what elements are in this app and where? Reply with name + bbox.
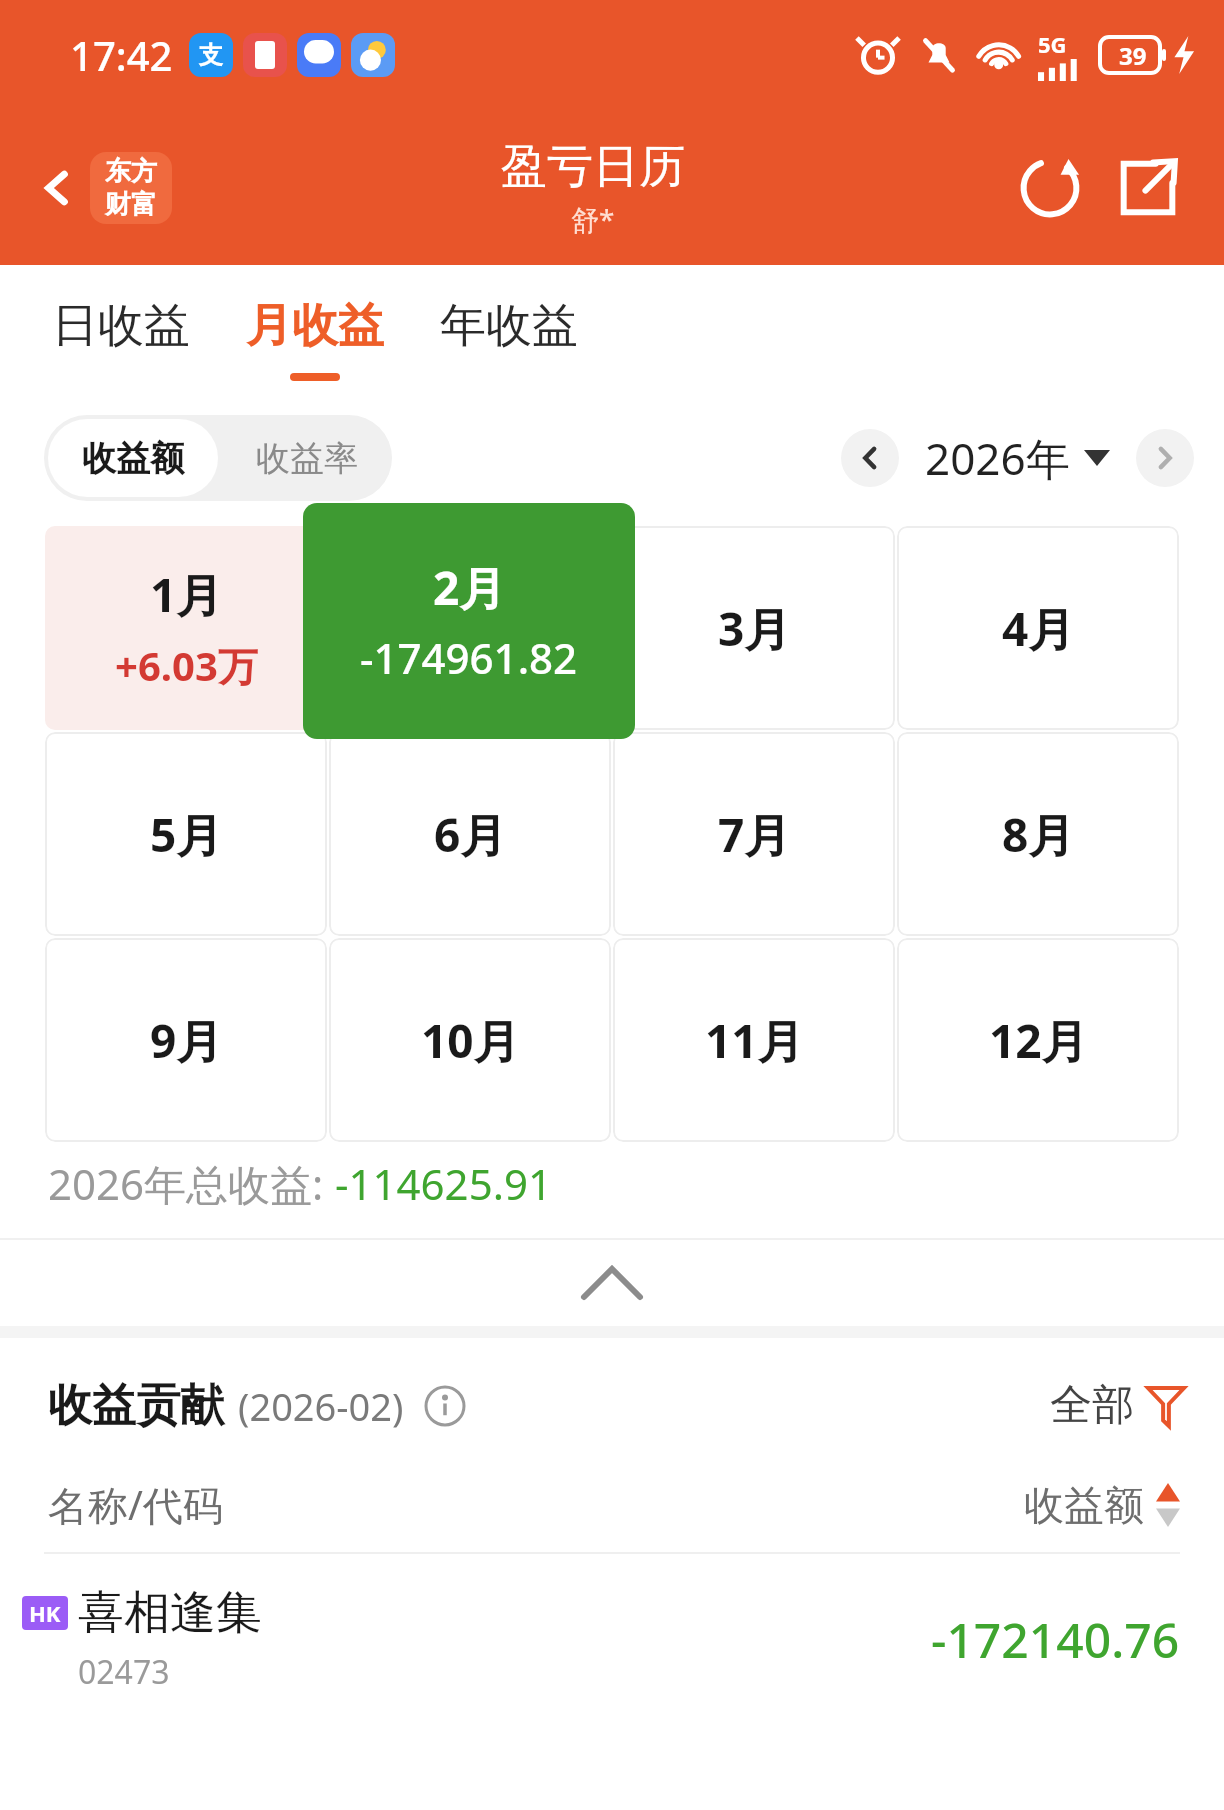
staticText: 2026年 [925,428,1070,488]
staticText: 9月 [150,1009,223,1072]
button[interactable]: 月收益 [242,293,388,385]
button[interactable]: 12月 [897,938,1179,1142]
staticText: -114625.91 [335,1155,552,1212]
button[interactable]: Info [422,1383,468,1429]
staticText: 东方 [105,155,157,188]
staticText: 12月 [989,1009,1088,1072]
button[interactable]: 收益额 [48,419,218,497]
button[interactable]: 收益率 [222,415,392,501]
button[interactable]: 日收益 [48,293,194,385]
button[interactable]: 年收益 [436,293,582,385]
button[interactable]: 4月 [897,526,1179,730]
button[interactable]: 9月 [45,938,327,1142]
staticText: 名称/代码 [48,1477,223,1532]
staticText: 年收益 [440,297,578,355]
staticText: 4月 [1002,597,1075,660]
staticText: -174961.82 [360,629,578,686]
staticText: 5月 [150,803,223,866]
staticText: 8月 [1002,803,1075,866]
button[interactable]: Refresh [1008,146,1092,230]
staticText: 收益额 [82,437,184,480]
staticText: -172140.76 [931,1607,1180,1672]
staticText: 收益额 [1024,1480,1144,1530]
button[interactable]: 2月 [303,503,635,739]
staticText: 2026年总收益: [48,1155,335,1212]
staticText: 月收益 [246,297,384,355]
staticText: 舒* [571,200,615,238]
staticText: 盈亏日历 [501,138,685,196]
staticText: 日收益 [52,297,190,355]
button[interactable]: 10月 [329,938,611,1142]
staticText: 10月 [421,1009,520,1072]
staticText: 收益率 [256,437,358,480]
staticText: 6月 [434,803,507,866]
button[interactable]: 1月 [45,526,327,730]
staticText: 全部 [1050,1379,1134,1432]
button[interactable]: Next year [1136,429,1194,487]
staticText: (2026-02) [238,1380,404,1432]
staticText: 支 [199,40,223,70]
staticText: 收益贡献 [48,1378,224,1433]
button[interactable]: 11月 [613,938,895,1142]
staticText: 财富 [105,188,157,221]
button[interactable] [329,526,611,730]
staticText: 喜相逢集 [78,1584,262,1642]
button[interactable]: Back to 东方财富 [34,152,178,224]
staticText: HK [29,1598,61,1628]
button[interactable]: 2026年 [925,428,1110,488]
staticText: 2月 [433,556,506,619]
staticText: 17:42 [70,28,173,82]
button[interactable]: Previous year [841,429,899,487]
button[interactable]: Share [1106,146,1190,230]
button[interactable]: 5月 [45,732,327,936]
button[interactable]: 6月 [329,732,611,936]
button[interactable]: HK [0,1554,1224,1694]
button[interactable]: 8月 [897,732,1179,936]
button[interactable]: Collapse [0,1240,1224,1326]
staticText: 11月 [705,1009,804,1072]
staticText: 5G [1038,29,1067,59]
staticText: 02473 [78,1650,170,1694]
staticText: 7月 [718,803,791,866]
button[interactable]: 3月 [613,526,895,730]
staticText: 3月 [718,597,791,660]
button[interactable]: 7月 [613,732,895,936]
staticText: 39 [1119,39,1147,72]
staticText: +6.03万 [115,638,258,693]
staticText: 1月 [150,563,223,626]
button[interactable]: 收益额 [1024,1480,1180,1530]
button[interactable]: 全部 [1050,1379,1184,1432]
